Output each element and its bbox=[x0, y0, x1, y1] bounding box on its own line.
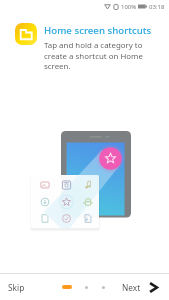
staticText: 03:18 bbox=[149, 3, 165, 11]
other: Next bbox=[149, 281, 158, 294]
staticText: Home screen shortcuts bbox=[44, 24, 152, 37]
button[interactable]: Skip bbox=[0, 275, 39, 300]
button[interactable]: Next bbox=[112, 276, 169, 299]
staticText: Skip bbox=[8, 282, 25, 293]
staticText: 100% bbox=[121, 3, 137, 11]
staticText: Next bbox=[122, 282, 141, 293]
staticText: Tap and hold a category to create a shor… bbox=[44, 40, 161, 71]
